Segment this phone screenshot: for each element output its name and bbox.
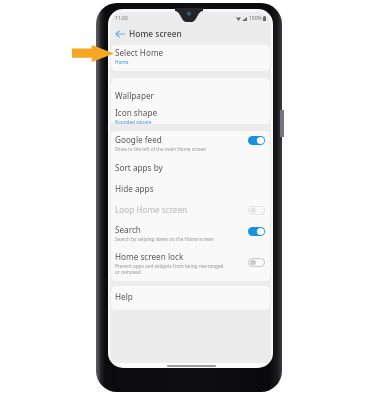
button[interactable]: Loop Home screen xyxy=(111,199,270,220)
staticText: Prevent apps and widgets from being rear… xyxy=(115,263,224,275)
staticText: Hide apps xyxy=(115,183,154,194)
button[interactable]: Icon shape xyxy=(111,99,270,124)
staticText: Home screen xyxy=(129,28,182,39)
button[interactable]: Help xyxy=(111,286,270,310)
staticText: Home xyxy=(115,59,129,65)
button[interactable]: Back xyxy=(114,28,126,40)
staticText: 100% xyxy=(249,15,262,22)
staticText: Sort apps by xyxy=(115,162,163,173)
button[interactable]: Home screen lock xyxy=(111,246,270,277)
staticText: Help xyxy=(115,291,133,302)
button[interactable]: Select Home xyxy=(111,45,270,71)
staticText: Rounded square xyxy=(115,119,152,124)
staticText: Search xyxy=(115,224,141,235)
staticText: Search by swiping down on the Home scree… xyxy=(115,236,214,242)
staticText: Loop Home screen xyxy=(115,204,188,215)
button[interactable]: Wallpaper xyxy=(111,78,270,99)
staticText: Home screen lock xyxy=(115,251,184,262)
button[interactable]: Sort apps by xyxy=(111,157,270,178)
button[interactable]: Toggle xyxy=(246,203,267,217)
staticText: 11:00 xyxy=(115,15,128,22)
button[interactable]: Toggle xyxy=(246,224,267,238)
button[interactable]: Hide apps xyxy=(111,178,270,199)
button[interactable]: Toggle xyxy=(246,255,267,269)
button[interactable]: Toggle xyxy=(246,133,267,147)
button[interactable]: Search xyxy=(111,220,270,246)
staticText: Icon shape xyxy=(115,107,158,118)
staticText: Wallpaper xyxy=(115,90,154,101)
button[interactable]: Google feed xyxy=(111,131,270,157)
staticText: Select Home xyxy=(115,47,164,58)
staticText: Google feed xyxy=(115,134,162,145)
staticText: Show to the left of the main Home screen xyxy=(115,146,207,152)
